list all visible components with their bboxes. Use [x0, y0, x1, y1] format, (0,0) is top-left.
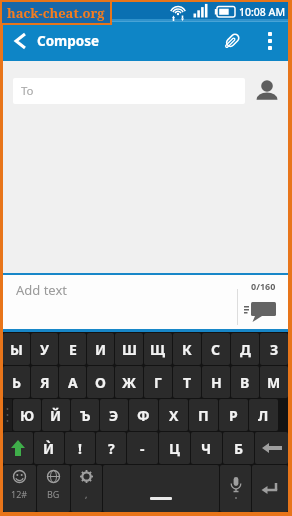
button[interactable]: BG	[37, 465, 70, 512]
staticText: Ч	[201, 439, 212, 458]
button[interactable]: Ц	[159, 432, 190, 464]
staticText: To	[21, 83, 34, 99]
staticText: Ь	[12, 373, 22, 392]
staticText: И	[95, 340, 107, 359]
button[interactable]: У	[31, 333, 58, 365]
button[interactable]	[220, 465, 251, 512]
staticText: Ю	[20, 406, 35, 425]
button[interactable]: -	[127, 432, 158, 464]
staticText: Ц	[169, 439, 180, 458]
staticText: hack-cheat.org	[7, 4, 105, 22]
button[interactable]: Т	[173, 366, 201, 398]
staticText: BG	[47, 488, 60, 500]
button[interactable]: Ъ	[71, 399, 99, 431]
button[interactable]: Щ	[144, 333, 172, 365]
staticText: Я	[40, 373, 50, 392]
staticText: М	[267, 373, 281, 392]
button[interactable]	[3, 21, 37, 61]
button[interactable]: Л	[249, 399, 278, 431]
staticText: 12#	[11, 488, 28, 500]
staticText: Ж	[122, 373, 136, 392]
button[interactable]: ?	[96, 432, 126, 464]
button[interactable]: А	[59, 366, 86, 398]
button[interactable]: М	[260, 366, 288, 398]
button[interactable]: К	[173, 333, 201, 365]
button[interactable]: ,	[71, 465, 102, 512]
button[interactable]: Н	[202, 366, 230, 398]
staticText: Д	[240, 340, 251, 359]
button[interactable]	[245, 78, 288, 104]
button[interactable]	[3, 432, 33, 464]
button[interactable]: Г	[144, 366, 172, 398]
staticText: Add text	[16, 281, 68, 299]
button[interactable]: С	[202, 333, 230, 365]
button[interactable]: Х	[159, 399, 188, 431]
staticText: Ѝ	[43, 439, 55, 458]
staticText: К	[182, 340, 192, 359]
staticText: З	[270, 340, 279, 359]
staticText: Ф	[137, 406, 150, 425]
button[interactable]: Д	[231, 333, 259, 365]
button[interactable]: 12#	[3, 465, 36, 512]
button[interactable]: И	[87, 333, 114, 365]
staticText: Т	[183, 373, 192, 392]
staticText: Щ	[150, 340, 166, 359]
staticText: Й	[50, 406, 62, 425]
staticText: С	[211, 340, 221, 359]
staticText: Е	[69, 340, 77, 359]
button[interactable]: Я	[31, 366, 58, 398]
button[interactable]: Ѝ	[34, 432, 64, 464]
button[interactable]: !	[65, 432, 95, 464]
button[interactable]: Й	[42, 399, 70, 431]
button[interactable]	[103, 465, 219, 512]
button[interactable]: Б	[223, 432, 254, 464]
staticText: У	[40, 340, 50, 359]
staticText: Б	[234, 439, 244, 458]
staticText: Л	[258, 406, 269, 425]
staticText: А	[68, 373, 78, 392]
staticText: !	[78, 439, 82, 458]
button[interactable]: Ю	[13, 399, 41, 431]
button[interactable]: О	[87, 366, 114, 398]
staticText: ,	[85, 488, 88, 500]
button[interactable]: Ь	[3, 366, 30, 398]
button[interactable]: Ш	[115, 333, 143, 365]
staticText: Х	[169, 406, 179, 425]
button[interactable]	[252, 465, 288, 512]
staticText: 10:08 AM	[239, 5, 286, 19]
staticText: Ы	[10, 340, 23, 359]
staticText: Н	[211, 373, 222, 392]
button[interactable]	[255, 432, 288, 464]
staticText: Ш	[122, 340, 137, 359]
button[interactable]: Е	[59, 333, 86, 365]
staticText: Р	[229, 406, 238, 425]
staticText: В	[240, 373, 250, 392]
button[interactable]: Ч	[191, 432, 222, 464]
button[interactable]: To	[13, 78, 245, 104]
button[interactable]: Р	[219, 399, 248, 431]
button[interactable]: Ф	[129, 399, 158, 431]
button[interactable]: Э	[100, 399, 128, 431]
staticText: Ъ	[80, 406, 91, 425]
staticText: 0/160	[251, 280, 276, 292]
staticText: ?	[108, 439, 115, 458]
button[interactable]	[212, 21, 252, 61]
staticText: Compose	[37, 32, 100, 50]
button[interactable]: Ы	[3, 333, 30, 365]
button[interactable]: П	[189, 399, 218, 431]
button[interactable]: В	[231, 366, 259, 398]
staticText: -	[140, 439, 145, 458]
staticText: П	[198, 406, 209, 425]
button[interactable]: Ж	[115, 366, 143, 398]
button[interactable]: Add text	[3, 275, 288, 329]
staticText: О	[95, 373, 106, 392]
button[interactable]	[252, 21, 288, 61]
staticText: Г	[154, 373, 162, 392]
button[interactable]: З	[260, 333, 288, 365]
staticText: Э	[109, 406, 119, 425]
